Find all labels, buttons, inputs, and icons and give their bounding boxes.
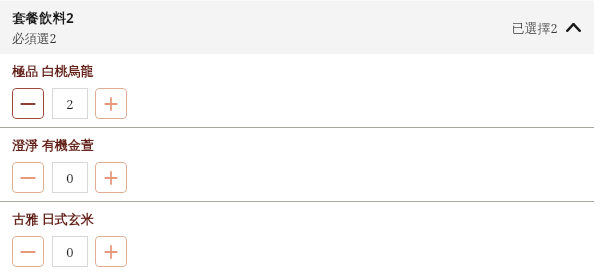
- staticText: 0: [66, 243, 74, 261]
- button[interactable]: Decrease quantity: [12, 162, 44, 193]
- staticText: 必須選2: [12, 30, 57, 47]
- button[interactable]: Increase quantity: [95, 236, 127, 267]
- staticText: 0: [66, 169, 74, 187]
- staticText: 已選擇2: [512, 19, 558, 36]
- button[interactable]: 已選擇2: [512, 19, 581, 36]
- staticText: 古雅 日式玄米: [12, 210, 94, 228]
- button[interactable]: 套餐飲料2: [0, 1, 594, 54]
- staticText: 澄淨 有機金萱: [12, 136, 94, 154]
- staticText: 2: [66, 95, 74, 113]
- button[interactable]: Increase quantity: [95, 162, 127, 193]
- staticText: 套餐飲料2: [12, 9, 74, 27]
- button[interactable]: Decrease quantity: [12, 88, 44, 119]
- button[interactable]: Decrease quantity: [12, 236, 44, 267]
- button[interactable]: Increase quantity: [95, 88, 127, 119]
- other: Collapse section: [566, 23, 581, 32]
- staticText: 極品 白桃烏龍: [12, 62, 94, 80]
